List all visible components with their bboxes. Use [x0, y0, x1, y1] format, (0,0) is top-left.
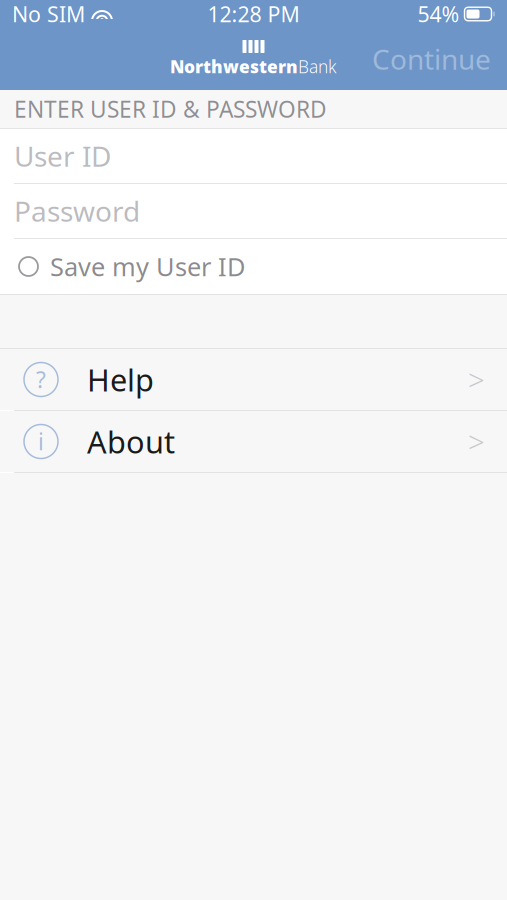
staticText: >	[468, 360, 485, 399]
button[interactable]: Continue	[356, 33, 507, 85]
staticText: No SIM	[12, 0, 85, 28]
staticText: Password	[14, 192, 140, 230]
staticText: Save my User ID	[50, 250, 245, 283]
staticText: Northwestern	[170, 55, 298, 78]
staticText: >	[468, 422, 485, 461]
staticText: User ID	[14, 137, 111, 175]
button[interactable]: ?	[0, 349, 507, 410]
staticText: 12:28 PM	[207, 0, 299, 28]
staticText: 54%	[417, 0, 459, 28]
staticText: ?	[36, 364, 46, 394]
staticText: Bank	[298, 55, 337, 78]
staticText: Help	[87, 359, 154, 400]
staticText: i	[38, 426, 44, 456]
staticText: About	[87, 421, 175, 462]
staticText: Continue	[372, 40, 491, 78]
staticText: ENTER USER ID & PASSWORD	[14, 94, 327, 124]
button[interactable]: i	[0, 411, 507, 472]
button[interactable]: Save my User ID	[0, 239, 507, 294]
